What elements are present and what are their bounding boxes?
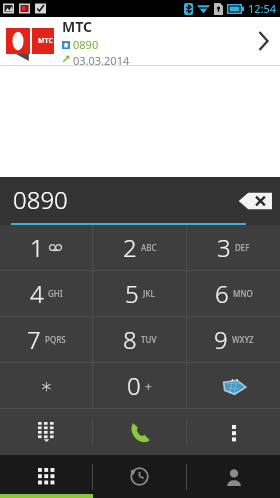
staticText: 6 [215, 277, 229, 310]
button[interactable]: 0 [93, 363, 186, 408]
button[interactable]: # [187, 363, 280, 408]
button[interactable]: 1 [0, 225, 92, 270]
button[interactable]: 7 [0, 317, 92, 362]
staticText: 2 [123, 231, 137, 264]
staticText: + [145, 378, 152, 394]
button[interactable]: 9 [187, 317, 280, 362]
staticText: MTC [38, 36, 53, 46]
staticText: 1 [30, 231, 44, 264]
button[interactable]: Recent calls tab [93, 455, 186, 498]
staticText: ∗ [40, 374, 53, 397]
staticText: 0 [127, 369, 141, 402]
staticText: MTC [62, 17, 92, 36]
staticText: 8 [123, 323, 137, 356]
button[interactable]: Hide keypad [0, 408, 92, 455]
staticText: 4 [30, 277, 44, 310]
staticText: 5 [125, 277, 139, 310]
staticText: MNO [233, 288, 253, 299]
staticText: 03.03.2014 [73, 53, 130, 65]
staticText: 7 [27, 323, 41, 356]
button[interactable]: Keypad tab [0, 455, 92, 498]
button[interactable]: More options [187, 408, 280, 455]
staticText: 12:54 [248, 1, 277, 16]
staticText: # [227, 372, 240, 399]
staticText: DEF [235, 242, 250, 253]
staticText: ABC [141, 242, 157, 253]
button[interactable]: Call [93, 408, 186, 455]
button[interactable]: 5 [93, 271, 186, 316]
staticText: WXYZ [232, 334, 254, 345]
button[interactable]: 6 [187, 271, 280, 316]
staticText: JKL [143, 288, 155, 299]
staticText: 9 [214, 323, 228, 356]
staticText: 0890 [73, 37, 99, 52]
button[interactable]: 3 [187, 225, 280, 270]
staticText: GHI [48, 288, 63, 299]
button[interactable]: 2 [93, 225, 186, 270]
staticText: TUV [141, 334, 157, 345]
button[interactable]: 8 [93, 317, 186, 362]
staticText: PQRS [45, 334, 66, 345]
staticText: 0890 [13, 183, 68, 216]
button[interactable]: Open contact details [246, 17, 280, 65]
button[interactable]: Contacts tab [187, 455, 280, 498]
button[interactable]: Backspace [238, 190, 272, 212]
staticText: 3 [217, 231, 231, 264]
button[interactable]: MTC [0, 17, 280, 65]
button[interactable]: ∗ [0, 363, 92, 408]
button[interactable]: 4 [0, 271, 92, 316]
